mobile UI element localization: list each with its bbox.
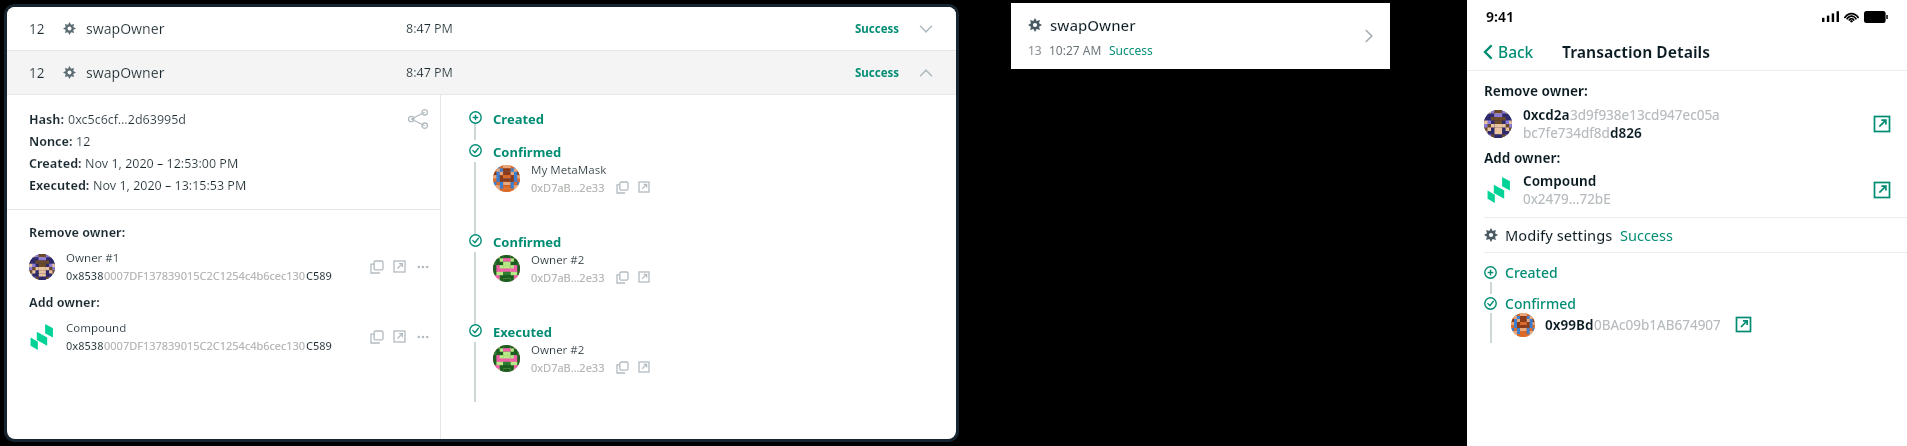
staticText: Nov 1, 2020 – 13:15:53 PM — [93, 177, 247, 194]
staticText: My MetaMask — [531, 162, 607, 178]
button[interactable]: Copy — [616, 181, 629, 194]
staticText: 13 — [1028, 42, 1042, 58]
staticText: 0xcd2a — [1523, 106, 1570, 124]
staticText: Nonce: — [29, 133, 76, 150]
button[interactable]: Copy — [370, 260, 384, 274]
staticText: Nov 1, 2020 – 12:53:00 PM — [85, 155, 239, 172]
button[interactable]: Owner #2 — [465, 342, 651, 375]
staticText: Remove owner: — [1484, 82, 1588, 100]
button[interactable]: Share — [410, 111, 426, 127]
staticText: 10:27 AM — [1049, 42, 1102, 58]
staticText: Success — [855, 21, 900, 37]
staticText: 0xD7aB…2e33 — [531, 270, 605, 285]
staticText: C589 — [306, 338, 332, 353]
button[interactable]: Open in explorer — [393, 330, 407, 344]
staticText: 0xc5c6cf…2d63995d — [68, 111, 187, 128]
staticText: Created: — [29, 155, 85, 172]
staticText: Created — [493, 110, 545, 128]
button[interactable]: Modify settings — [1467, 218, 1907, 252]
staticText: Created — [1505, 263, 1558, 282]
staticText: Transaction Details — [1562, 41, 1711, 62]
staticText: 0x99Bd — [1545, 316, 1594, 334]
staticText: swapOwner — [1050, 15, 1136, 35]
staticText: swapOwner — [86, 19, 165, 38]
staticText: 0x8538 — [66, 268, 104, 283]
staticText: Compound — [66, 320, 127, 336]
staticText: Remove owner: — [29, 224, 126, 241]
button[interactable]: Compound — [1484, 172, 1897, 208]
staticText: Hash: — [29, 111, 68, 128]
button[interactable]: Compound — [29, 318, 434, 355]
button[interactable]: 0xcd2a — [1484, 106, 1897, 142]
staticText: 0xD7aB…2e33 — [531, 180, 605, 195]
staticText: 8:47 PM — [406, 64, 453, 81]
staticText: Compound — [1523, 172, 1597, 190]
button[interactable]: More — [416, 330, 430, 344]
staticText: 0BAc09b1AB674907 — [1594, 316, 1721, 334]
button[interactable]: Copy — [616, 361, 629, 374]
staticText: 0007DF137839015C2C1254c4b6cec130 — [104, 268, 306, 283]
staticText: Add owner: — [29, 294, 100, 311]
staticText: swapOwner — [86, 63, 165, 82]
button[interactable]: Open in explorer — [393, 260, 407, 274]
staticText: 3d9f938e13cd947ec05a — [1570, 106, 1720, 124]
button[interactable]: Open in explorer — [1873, 181, 1892, 200]
other: Open in explorer — [1735, 316, 1753, 334]
button[interactable]: More — [416, 260, 430, 274]
staticText: 12 — [29, 64, 45, 82]
button[interactable]: swapOwner — [1011, 3, 1390, 69]
button[interactable]: 12 — [7, 7, 956, 50]
button[interactable]: Open in explorer — [638, 361, 651, 374]
staticText: Success — [1109, 42, 1153, 58]
staticText: Executed: — [29, 177, 93, 194]
button[interactable]: 12 — [7, 51, 956, 94]
staticText: 12 — [29, 20, 45, 38]
staticText: 0007DF137839015C2C1254c4b6cec130 — [104, 338, 306, 353]
staticText: 12 — [76, 133, 91, 150]
button[interactable]: Owner #1 — [29, 248, 434, 285]
other: Open transaction — [1360, 27, 1378, 45]
button[interactable]: Copy — [370, 330, 384, 344]
staticText: Back — [1498, 41, 1534, 62]
staticText: Executed — [493, 323, 553, 341]
staticText: 9:41 — [1486, 7, 1514, 26]
staticText: Confirmed — [1505, 294, 1576, 313]
staticText: C589 — [306, 268, 332, 283]
staticText: Success — [855, 65, 900, 81]
staticText: Add owner: — [1484, 149, 1561, 167]
staticText: 0x8538 — [66, 338, 104, 353]
staticText: d826 — [1610, 124, 1642, 142]
button[interactable]: Back — [1480, 41, 1534, 62]
button[interactable]: My MetaMask — [465, 162, 651, 195]
staticText: Owner #1 — [66, 250, 120, 266]
button[interactable]: Open in explorer — [1873, 115, 1892, 134]
staticText: Confirmed — [493, 233, 562, 251]
staticText: Modify settings — [1505, 225, 1613, 245]
staticText: Success — [1620, 225, 1673, 245]
button[interactable]: Copy — [616, 271, 629, 284]
staticText: bc7fe734df8d — [1523, 124, 1610, 142]
staticText: Confirmed — [493, 143, 562, 161]
staticText: 0x2479…72bE — [1523, 190, 1611, 208]
staticText: 8:47 PM — [406, 20, 453, 37]
button[interactable]: Open in explorer — [638, 271, 651, 284]
button[interactable]: Owner #2 — [465, 252, 651, 285]
staticText: Owner #2 — [531, 342, 585, 358]
staticText: 0xD7aB…2e33 — [531, 360, 605, 375]
button[interactable]: Open in explorer — [638, 181, 651, 194]
button[interactable]: 0x99Bd — [1511, 313, 1753, 337]
staticText: Owner #2 — [531, 252, 585, 268]
